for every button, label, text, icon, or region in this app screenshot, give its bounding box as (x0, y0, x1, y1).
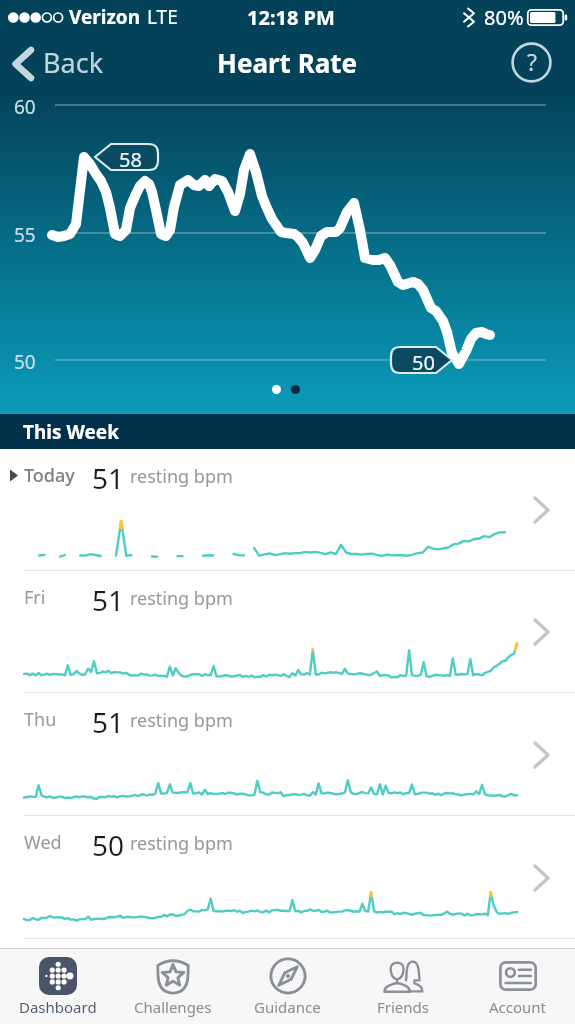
staticText: 50 (92, 826, 125, 856)
button[interactable]: Challenges (115, 949, 230, 1024)
staticText: Thu (24, 707, 57, 732)
staticText: 51 (92, 581, 125, 611)
staticText: resting bpm (130, 586, 233, 611)
button[interactable]: Guidance (230, 949, 345, 1024)
staticText: This Week (23, 419, 119, 445)
button[interactable]: Back (0, 41, 116, 86)
staticText: 12:18 PM (247, 4, 335, 31)
staticText: Dashboard (19, 997, 97, 1017)
button[interactable]: Help (511, 42, 552, 83)
staticText: Verizon (69, 4, 141, 30)
staticText: 50 (412, 349, 435, 376)
staticText: ? (527, 46, 537, 77)
staticText: 80% (484, 4, 524, 31)
staticText: LTE (147, 4, 178, 30)
staticText: 51 (92, 703, 125, 733)
button[interactable]: Wed (0, 816, 575, 939)
button[interactable]: Account (460, 949, 575, 1024)
staticText: Back (43, 44, 104, 81)
staticText: Today (24, 463, 75, 488)
staticText: Heart Rate (217, 45, 358, 80)
button[interactable]: Dashboard (0, 949, 115, 1024)
staticText: Wed (24, 830, 62, 855)
staticText: 58 (119, 146, 142, 173)
staticText: resting bpm (130, 831, 233, 856)
staticText: Guidance (254, 997, 321, 1017)
staticText: resting bpm (130, 708, 233, 733)
staticText: 55 (14, 222, 36, 248)
button[interactable]: Thu (0, 693, 575, 816)
staticText: resting bpm (130, 464, 233, 489)
staticText: Fri (24, 585, 46, 610)
button[interactable]: Fri (0, 571, 575, 693)
button[interactable]: Friends (345, 949, 460, 1024)
staticText: 60 (14, 94, 36, 120)
staticText: Challenges (134, 997, 212, 1017)
button[interactable]: Today (0, 449, 575, 571)
staticText: Friends (377, 997, 429, 1017)
staticText: Account (489, 997, 547, 1017)
staticText: 51 (92, 459, 125, 489)
staticText: 50 (14, 349, 36, 375)
